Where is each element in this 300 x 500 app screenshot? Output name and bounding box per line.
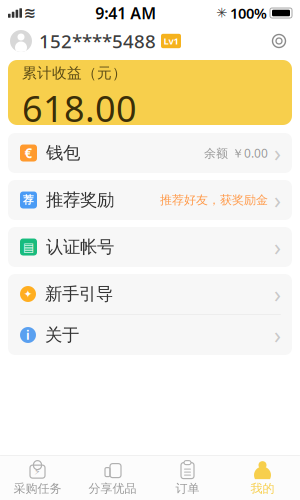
staticText: 钱包 [46, 142, 80, 164]
staticText: ▤ [23, 240, 34, 254]
staticText: ≋ [23, 5, 35, 21]
staticText: 9:41 AM [95, 2, 156, 24]
button[interactable]: 荐 [8, 180, 292, 220]
button[interactable]: ▤ [8, 227, 292, 267]
staticText: 订单 [175, 481, 199, 496]
staticText: 累计收益（元） [22, 64, 127, 82]
staticText: € [24, 144, 32, 162]
staticText: 余额 ￥0.00 [204, 145, 268, 161]
staticText: › [274, 320, 281, 350]
button[interactable]: 我的 [225, 456, 300, 500]
staticText: › [274, 138, 281, 168]
staticText: 认证帐号 [46, 236, 114, 258]
button[interactable]: ✦ [8, 274, 292, 314]
button[interactable]: 分享优品 [75, 456, 150, 500]
staticText: 新手引导 [45, 283, 113, 305]
staticText: 推荐奖励 [46, 189, 114, 211]
button[interactable]: i [8, 315, 292, 355]
staticText: ✦ [23, 288, 32, 300]
staticText: 152****5488 [39, 29, 156, 53]
staticText: 100% [230, 3, 267, 23]
staticText: › [274, 279, 281, 309]
staticText: › [274, 232, 281, 262]
staticText: 我的 [250, 481, 274, 496]
staticText: 荐 [23, 193, 34, 206]
button[interactable]: 订单 [150, 456, 225, 500]
staticText: ⚡︎ [34, 466, 41, 477]
staticText: ✳ [216, 5, 227, 20]
staticText: i [26, 327, 30, 343]
staticText: 618.00 [22, 84, 137, 132]
staticText: 采购任务 [13, 481, 61, 496]
button[interactable]: ⚡︎ [0, 456, 75, 500]
button[interactable]: 设置 [266, 28, 292, 54]
staticText: 关于 [45, 324, 79, 346]
staticText: 分享优品 [88, 481, 136, 496]
button[interactable]: € [8, 133, 292, 173]
staticText: Lv1 [163, 35, 178, 47]
staticText: › [274, 185, 281, 215]
staticText: 推荐好友，获奖励金 [160, 193, 268, 207]
